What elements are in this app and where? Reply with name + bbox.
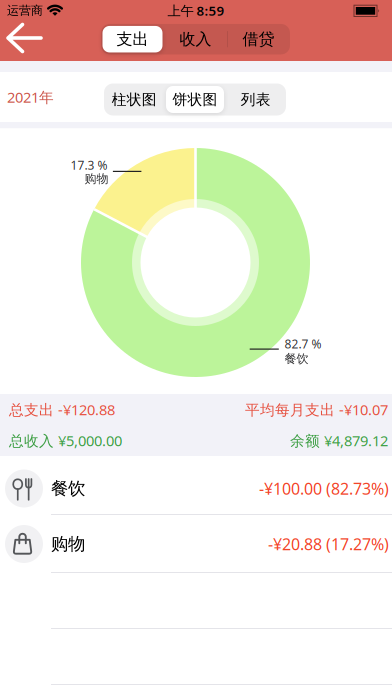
button[interactable]: 借贷 [227,24,290,54]
staticText: 餐饮 [51,478,85,499]
button[interactable]: Back [0,19,50,59]
staticText: -¥100.00 (82.73%) [259,478,389,499]
staticText: 余额 ¥4,879.12 [290,431,388,450]
staticText: 总收入 ¥5,000.00 [9,431,122,450]
staticText: 总支出 -¥120.88 [9,400,115,419]
staticText: 购物 [85,171,109,186]
button[interactable]: 列表 [225,83,286,115]
staticText: 餐饮 [285,351,309,366]
staticText: -¥20.88 (17.27%) [268,533,389,555]
staticText: 购物 [51,533,85,555]
staticText: 收入 [179,29,211,49]
staticText: 借贷 [242,29,274,49]
staticText: 运营商 [7,3,43,18]
button[interactable]: 收入 [164,24,227,54]
staticText: 上午 8:59 [167,2,224,19]
staticText: 平均每月支出 -¥10.07 [245,400,388,419]
staticText: 列表 [241,90,271,108]
staticText: 2021年 [7,87,54,107]
button[interactable]: 餐饮 [0,456,392,515]
button[interactable]: 饼状图 [165,83,225,115]
staticText: 饼状图 [172,90,217,108]
staticText: 柱状图 [112,90,157,108]
staticText: 17.3 % [70,157,107,173]
staticText: 支出 [116,29,148,49]
button[interactable]: 支出 [101,24,164,54]
button[interactable]: 购物 [0,515,392,573]
staticText: 82.7 % [284,336,321,352]
button[interactable]: 柱状图 [104,83,165,115]
